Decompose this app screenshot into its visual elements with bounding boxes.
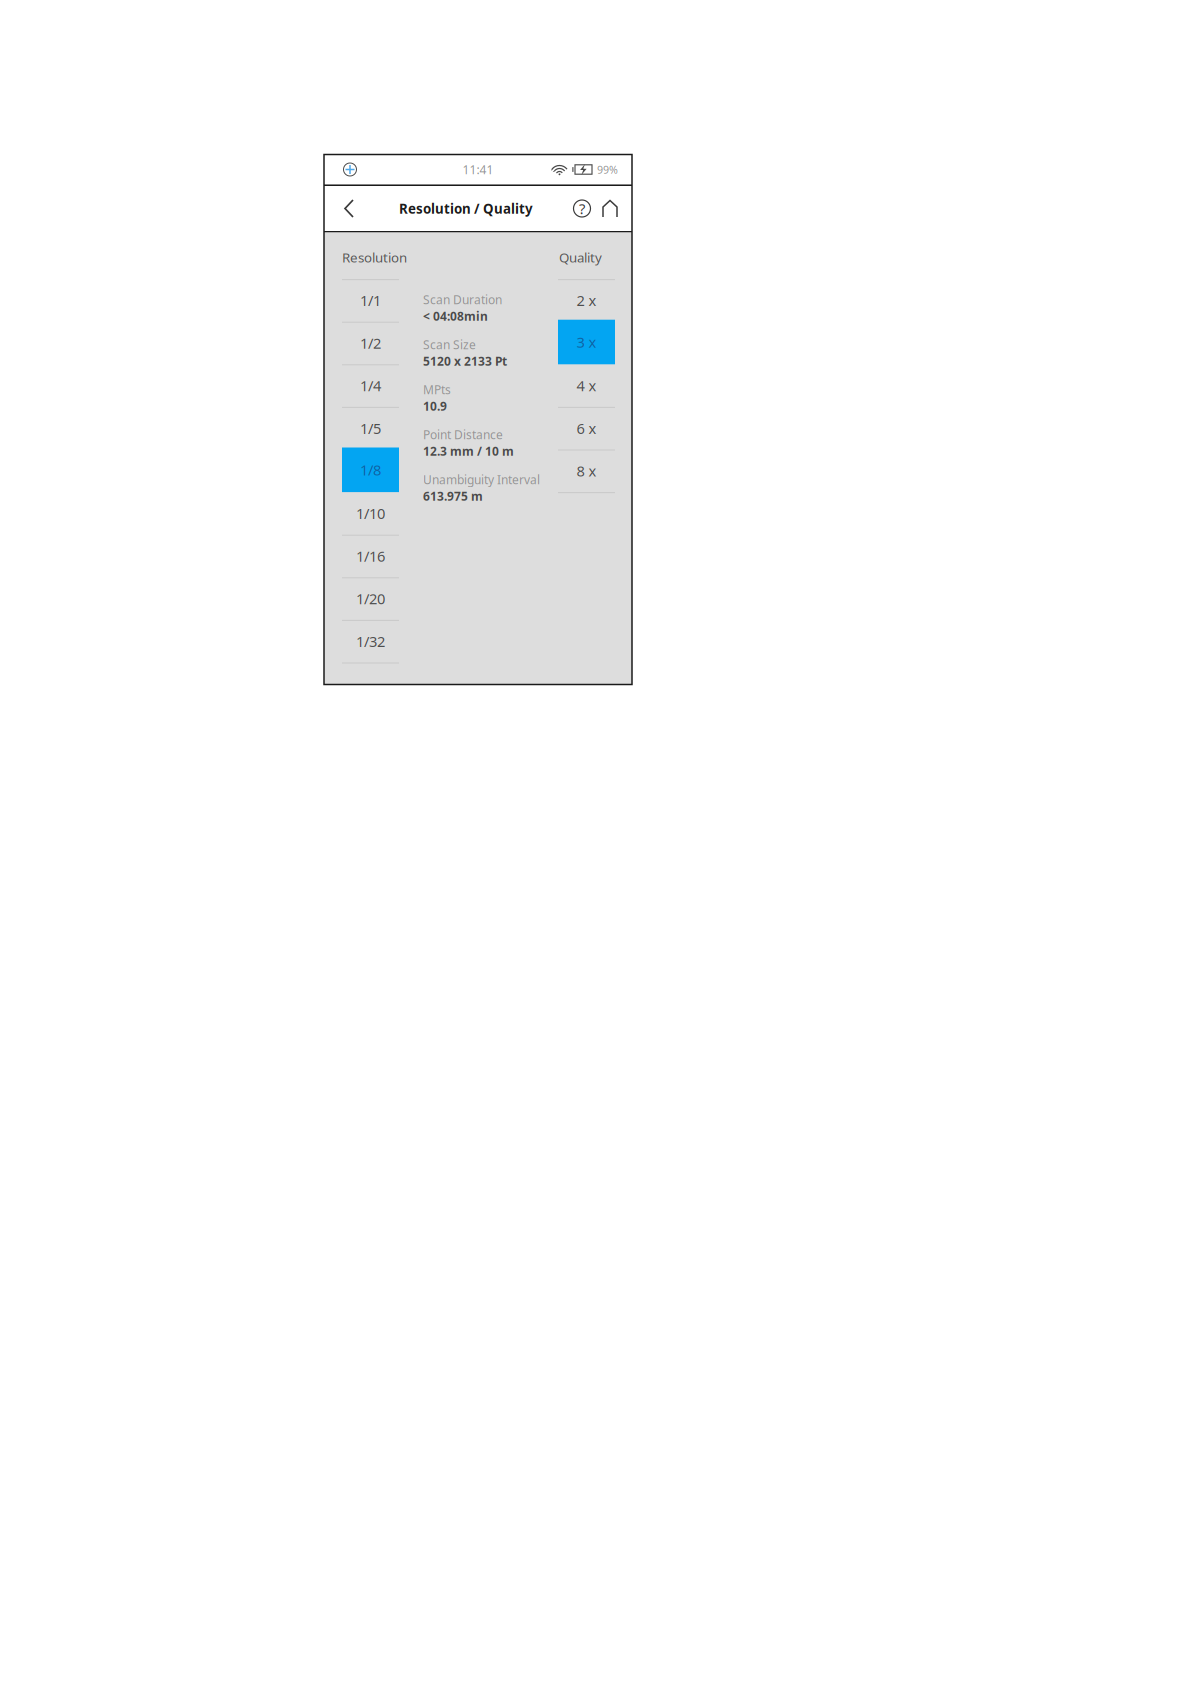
staticText: 1/20 (356, 589, 385, 608)
staticText: 5120 x 2133 Pt (423, 353, 507, 369)
staticText: MPts (423, 381, 451, 397)
button[interactable]: 2 x (558, 279, 615, 322)
button[interactable]: 8 x (558, 449, 615, 492)
button[interactable]: 1/4 (342, 364, 399, 407)
staticText: 6 x (576, 418, 596, 438)
staticText: 10.9 (423, 398, 447, 414)
button[interactable]: 1/2 (342, 322, 399, 364)
staticText: Resolution / Quality (399, 200, 533, 217)
staticText: 8 x (576, 461, 596, 481)
staticText: 2 x (576, 291, 596, 310)
button[interactable]: 1/1 (342, 279, 399, 322)
button[interactable]: 1/10 (342, 492, 399, 535)
button[interactable]: 1/20 (342, 577, 399, 620)
staticText: 1/1 (360, 291, 381, 310)
staticText: Quality (559, 248, 602, 266)
staticText: Scan Duration (423, 291, 502, 307)
staticText: 1/4 (360, 376, 381, 395)
button[interactable]: 3 x (558, 322, 615, 364)
button[interactable]: 1/5 (342, 407, 399, 449)
staticText: Unambiguity Interval (423, 471, 540, 487)
staticText: 99% (597, 162, 618, 177)
staticText: 1/2 (360, 333, 381, 353)
staticText: Scan Size (423, 336, 476, 352)
staticText: 613.975 m (423, 488, 483, 504)
button[interactable]: Help (568, 186, 596, 230)
button[interactable]: Home (596, 186, 624, 230)
staticText: 4 x (576, 376, 596, 395)
button[interactable]: 4 x (558, 364, 615, 407)
button[interactable]: Add (337, 154, 363, 184)
staticText: 1/10 (356, 504, 385, 523)
staticText: < 04:08min (423, 308, 488, 324)
button[interactable]: Back (331, 186, 367, 230)
staticText: 1/5 (360, 418, 381, 438)
button[interactable]: 6 x (558, 407, 615, 449)
staticText: 1/16 (356, 546, 385, 566)
staticText: Point Distance (423, 426, 503, 442)
button[interactable]: 1/8 (342, 449, 399, 492)
staticText: 1/8 (360, 460, 381, 480)
staticText: 3 x (576, 332, 596, 352)
button[interactable]: 1/16 (342, 535, 399, 577)
staticText: Resolution (342, 248, 407, 266)
staticText: 1/32 (356, 631, 385, 651)
staticText: 12.3 mm / 10 m (423, 443, 514, 459)
button[interactable]: 1/32 (342, 620, 399, 662)
staticText: 11:41 (462, 161, 493, 177)
staticText: ? (579, 199, 585, 218)
